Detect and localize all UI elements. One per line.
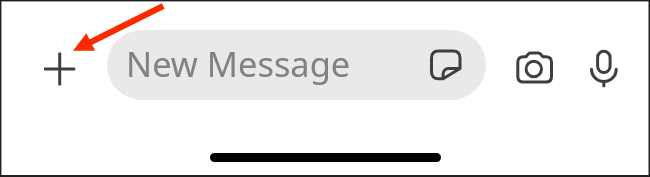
button[interactable]: New Message [107,30,486,100]
button[interactable]: Stickers [428,47,466,85]
button[interactable]: Voice message [589,46,616,90]
button[interactable]: Add [40,50,80,90]
button[interactable]: Camera [514,48,558,92]
staticText: New Message [126,40,351,87]
